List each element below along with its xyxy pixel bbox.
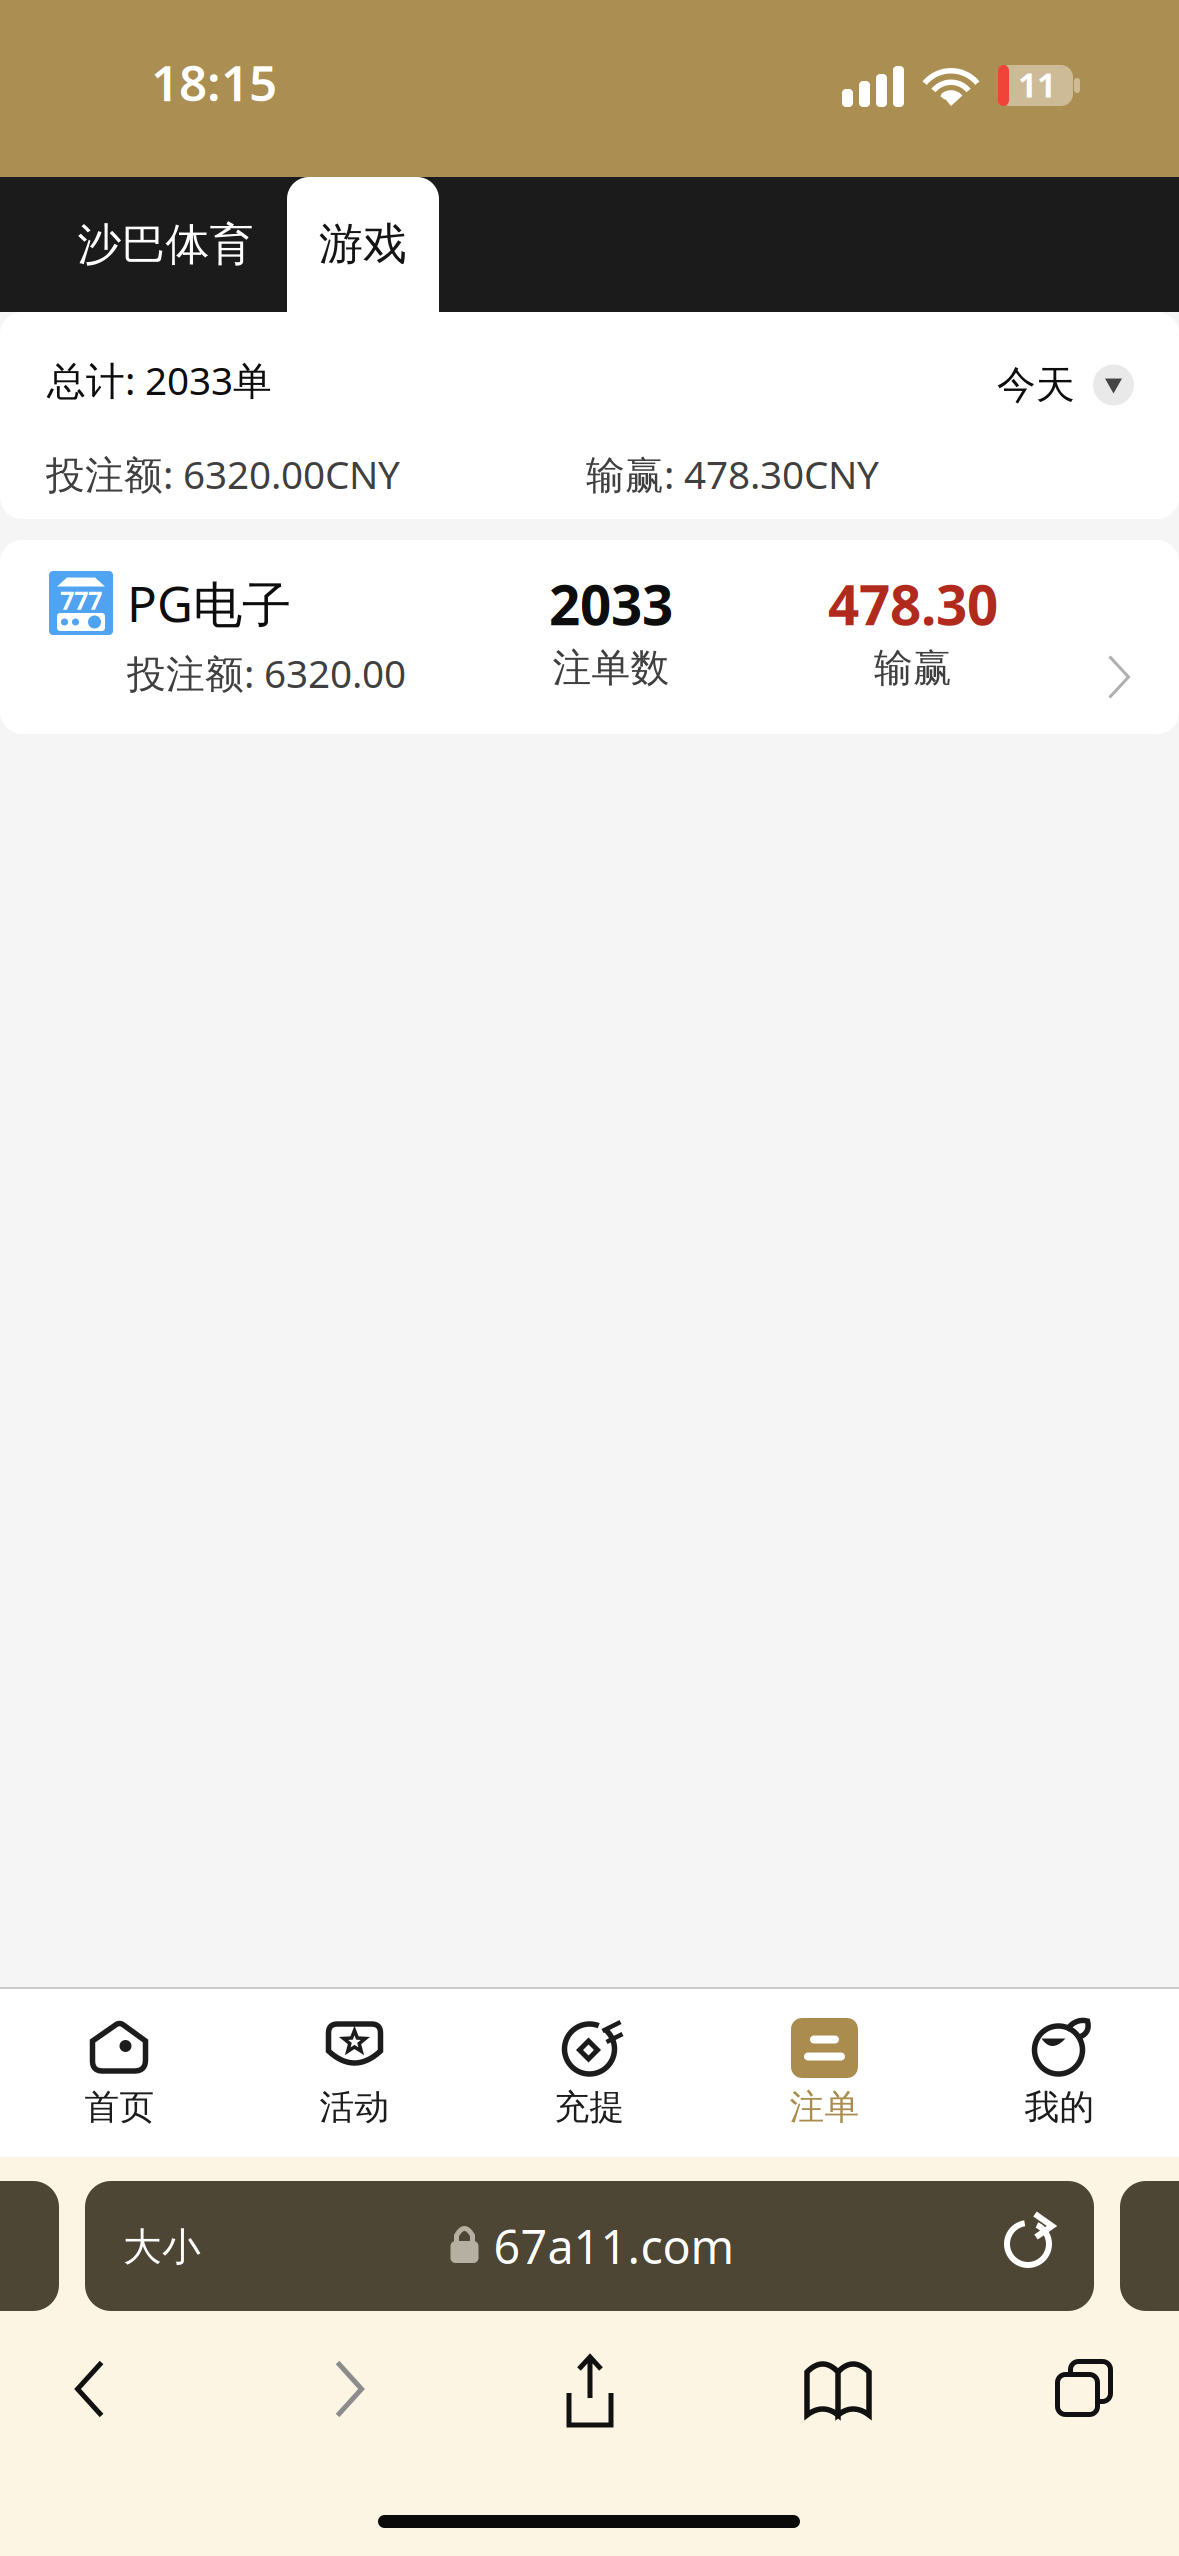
button[interactable]: 沙巴体育 [58, 177, 273, 312]
staticText: 输赢: 478.30CNY [586, 448, 879, 500]
staticText: 沙巴体育 [77, 217, 253, 271]
button[interactable]: 充提 [472, 1989, 707, 2157]
staticText: 总计: 2033单 [47, 354, 272, 406]
button[interactable]: 游戏 [287, 177, 439, 312]
button[interactable]: 今天 [946, 355, 1134, 415]
staticText: 充提 [554, 2086, 624, 2129]
button[interactable]: 注单 [707, 1989, 942, 2157]
button[interactable]: 我的 [942, 1989, 1177, 2157]
button[interactable]: 大小 [85, 2181, 1094, 2311]
staticText: 活动 [319, 2086, 389, 2129]
staticText: 大小 [123, 2223, 201, 2271]
button[interactable]: 首页 [2, 1989, 237, 2157]
staticText: 首页 [84, 2086, 154, 2129]
staticText: 11 [1018, 62, 1056, 107]
staticText: 游戏 [319, 217, 407, 271]
button[interactable]: 777 [0, 540, 1179, 734]
staticText: 67a11.com [493, 2215, 734, 2277]
staticText: 478.30 [828, 568, 998, 640]
staticText: 投注额: 6320.00 [127, 647, 406, 699]
staticText: 注单 [789, 2086, 859, 2129]
staticText: 我的 [1024, 2086, 1094, 2129]
staticText: 777 [60, 583, 102, 617]
staticText: 输赢 [874, 644, 952, 692]
button[interactable]: Bookmarks [783, 2339, 893, 2439]
staticText: 2033 [549, 568, 673, 640]
button[interactable]: Forward [296, 2339, 406, 2439]
staticText: 18:15 [151, 49, 277, 115]
button[interactable]: Share [535, 2339, 645, 2439]
button[interactable]: Back [36, 2339, 146, 2439]
staticText: 注单数 [552, 644, 669, 692]
staticText: PG电子 [127, 570, 291, 636]
button[interactable]: Tabs [1030, 2339, 1140, 2439]
staticText: 今天 [997, 361, 1075, 409]
button[interactable]: 活动 [237, 1989, 472, 2157]
staticText: 投注额: 6320.00CNY [46, 448, 400, 500]
